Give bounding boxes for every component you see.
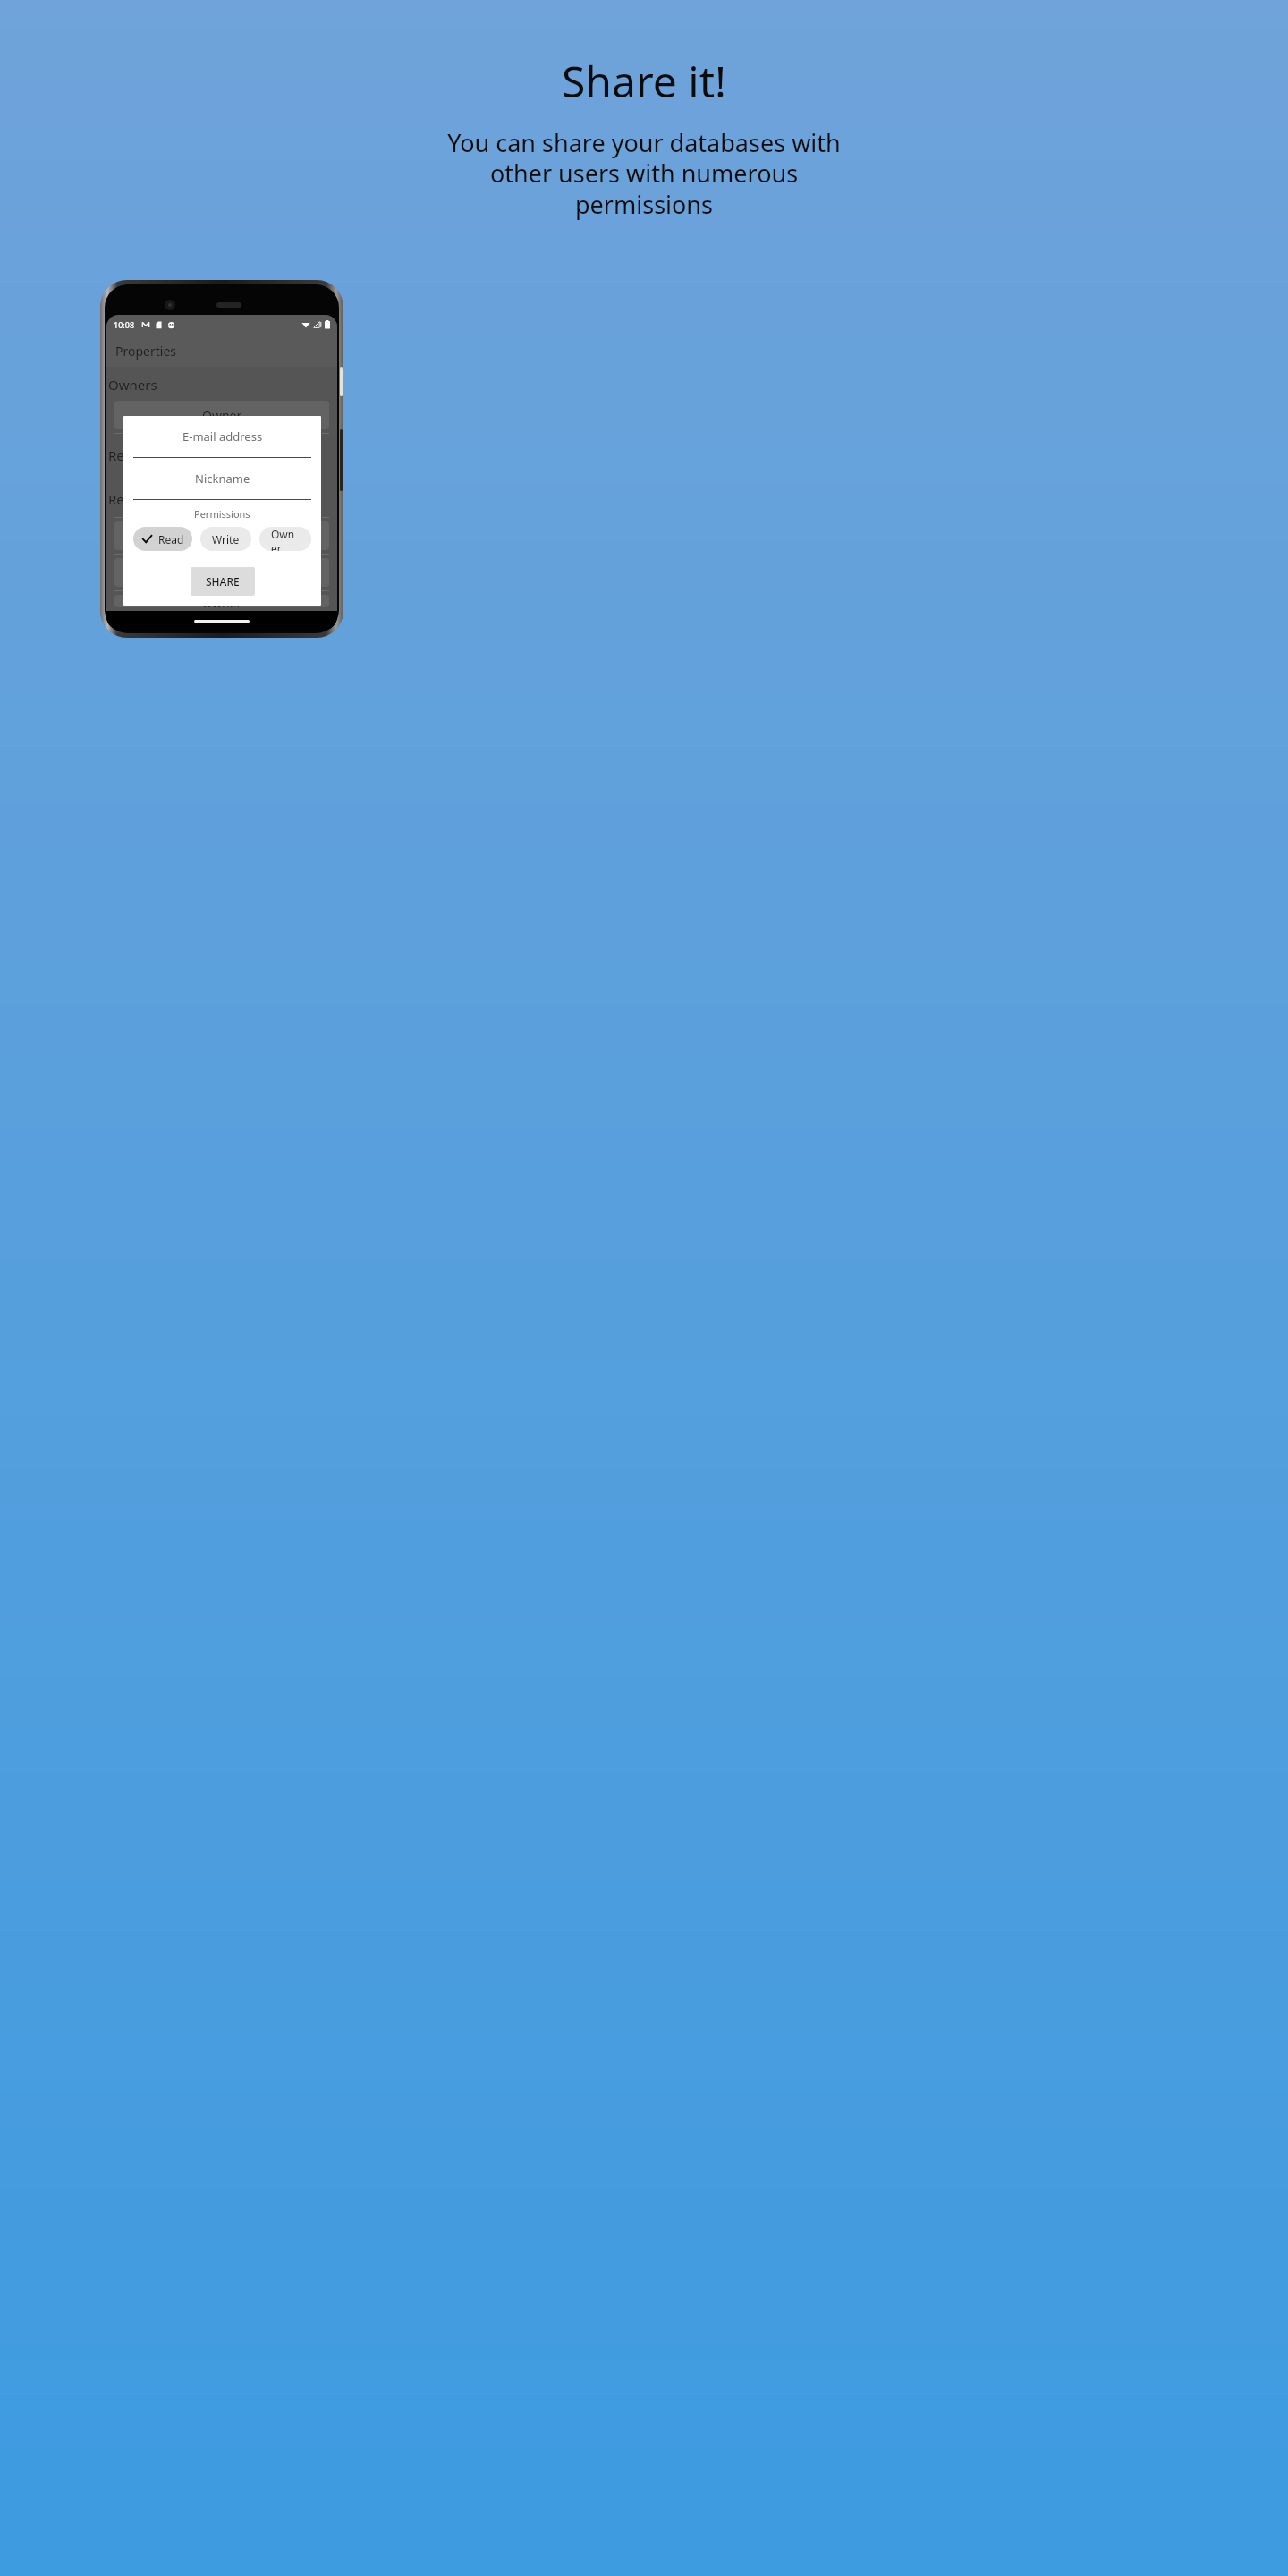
staticText: SHARE <box>206 574 240 589</box>
staticText: 10:08 <box>114 319 135 330</box>
button[interactable]: Owner <box>114 401 329 429</box>
staticText: Owners <box>108 376 157 394</box>
staticText: Owner <box>202 595 242 607</box>
staticText: Read/write <box>108 446 177 464</box>
staticText: You can share your databases with other … <box>447 126 841 221</box>
button[interactable]: E-mail address <box>133 416 311 458</box>
button[interactable]: Write <box>200 527 251 551</box>
button[interactable]: Mail <box>114 558 329 587</box>
staticText: E-mail address <box>182 428 263 445</box>
staticText: Write <box>212 532 240 547</box>
button[interactable]: Share <box>114 521 329 550</box>
staticText: Mail <box>209 564 234 581</box>
button[interactable]: SHARE <box>191 567 255 596</box>
button[interactable]: Owner <box>114 595 329 607</box>
staticText: Properties <box>115 343 176 360</box>
staticText: Read <box>108 490 140 508</box>
button[interactable]: Nickname <box>133 458 311 500</box>
staticText: Nickname <box>195 470 250 487</box>
staticText: Owner <box>202 407 242 424</box>
button[interactable]: Read <box>133 527 192 551</box>
button[interactable]: Owner <box>259 527 311 551</box>
staticText: Permissions <box>194 507 250 521</box>
staticText: Owner <box>271 527 300 551</box>
staticText: Read <box>158 532 184 547</box>
staticText: Share <box>205 528 239 545</box>
staticText: Share it! <box>562 52 726 110</box>
